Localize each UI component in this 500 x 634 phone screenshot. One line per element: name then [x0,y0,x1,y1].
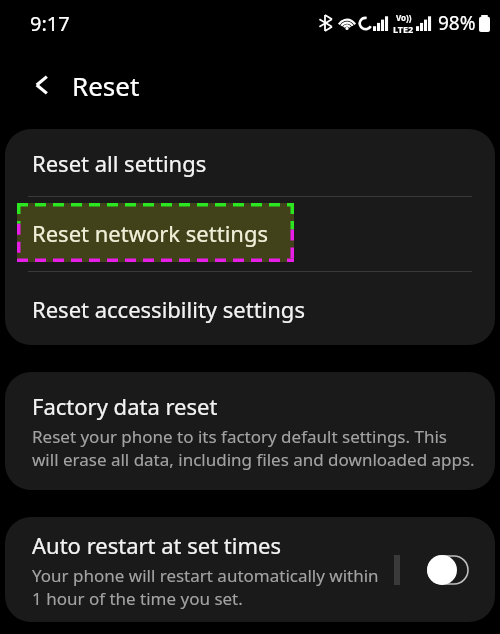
button[interactable]: Auto restart at set times [5,530,394,610]
staticText: 9:17 [30,10,70,37]
button[interactable]: Auto restart toggle [400,553,495,587]
staticText: Vo)) [396,12,412,23]
button[interactable]: Reset network settings [5,197,495,271]
button[interactable]: Reset accessibility settings [5,272,495,345]
button[interactable]: Back [20,63,64,107]
staticText: Reset your phone to its factory default … [32,425,475,471]
staticText: Factory data reset [32,391,218,421]
button[interactable]: Reset all settings [5,129,495,196]
staticText: Auto restart at set times [32,530,281,560]
staticText: Reset network settings [32,219,268,249]
staticText: Reset [72,68,140,103]
staticText: Reset all settings [32,148,207,178]
staticText: 98% [438,10,476,36]
staticText: Your phone will restart automatically wi… [32,564,386,610]
staticText: LTE2 [393,23,414,35]
staticText: Reset network settings [32,218,268,248]
button[interactable]: Reset network settings [17,203,294,262]
staticText: Reset accessibility settings [32,294,305,324]
button[interactable]: Factory data reset [5,372,495,490]
